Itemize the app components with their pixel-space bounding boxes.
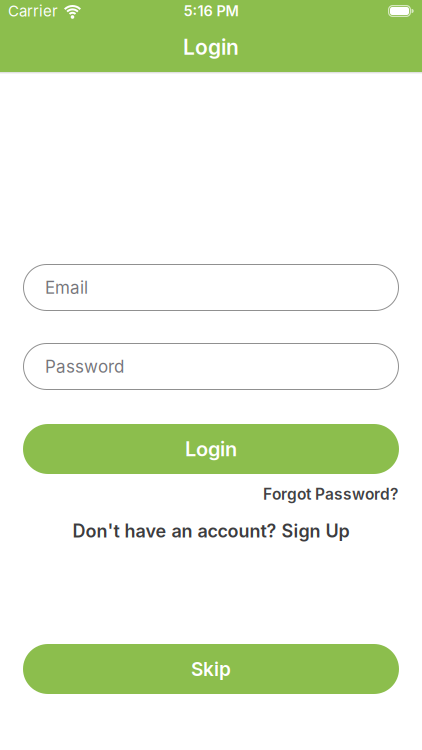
staticText: Forgot Password? xyxy=(263,485,398,503)
staticText: Carrier xyxy=(8,2,58,20)
button[interactable]: Email xyxy=(23,264,399,311)
staticText: Email xyxy=(45,277,88,298)
button[interactable]: Sign Up xyxy=(281,520,349,542)
staticText: 5:16 PM xyxy=(183,2,238,20)
button[interactable]: Login xyxy=(23,424,399,474)
staticText: Don't have an account? xyxy=(72,520,276,542)
staticText: Password xyxy=(45,356,124,377)
staticText: Login xyxy=(185,437,237,461)
button[interactable]: Skip xyxy=(23,644,399,694)
staticText: Skip xyxy=(191,657,231,680)
staticText: Sign Up xyxy=(281,520,349,542)
button[interactable]: Forgot Password? xyxy=(263,485,398,503)
button[interactable]: Password xyxy=(23,343,399,390)
staticText: Login xyxy=(183,34,239,60)
